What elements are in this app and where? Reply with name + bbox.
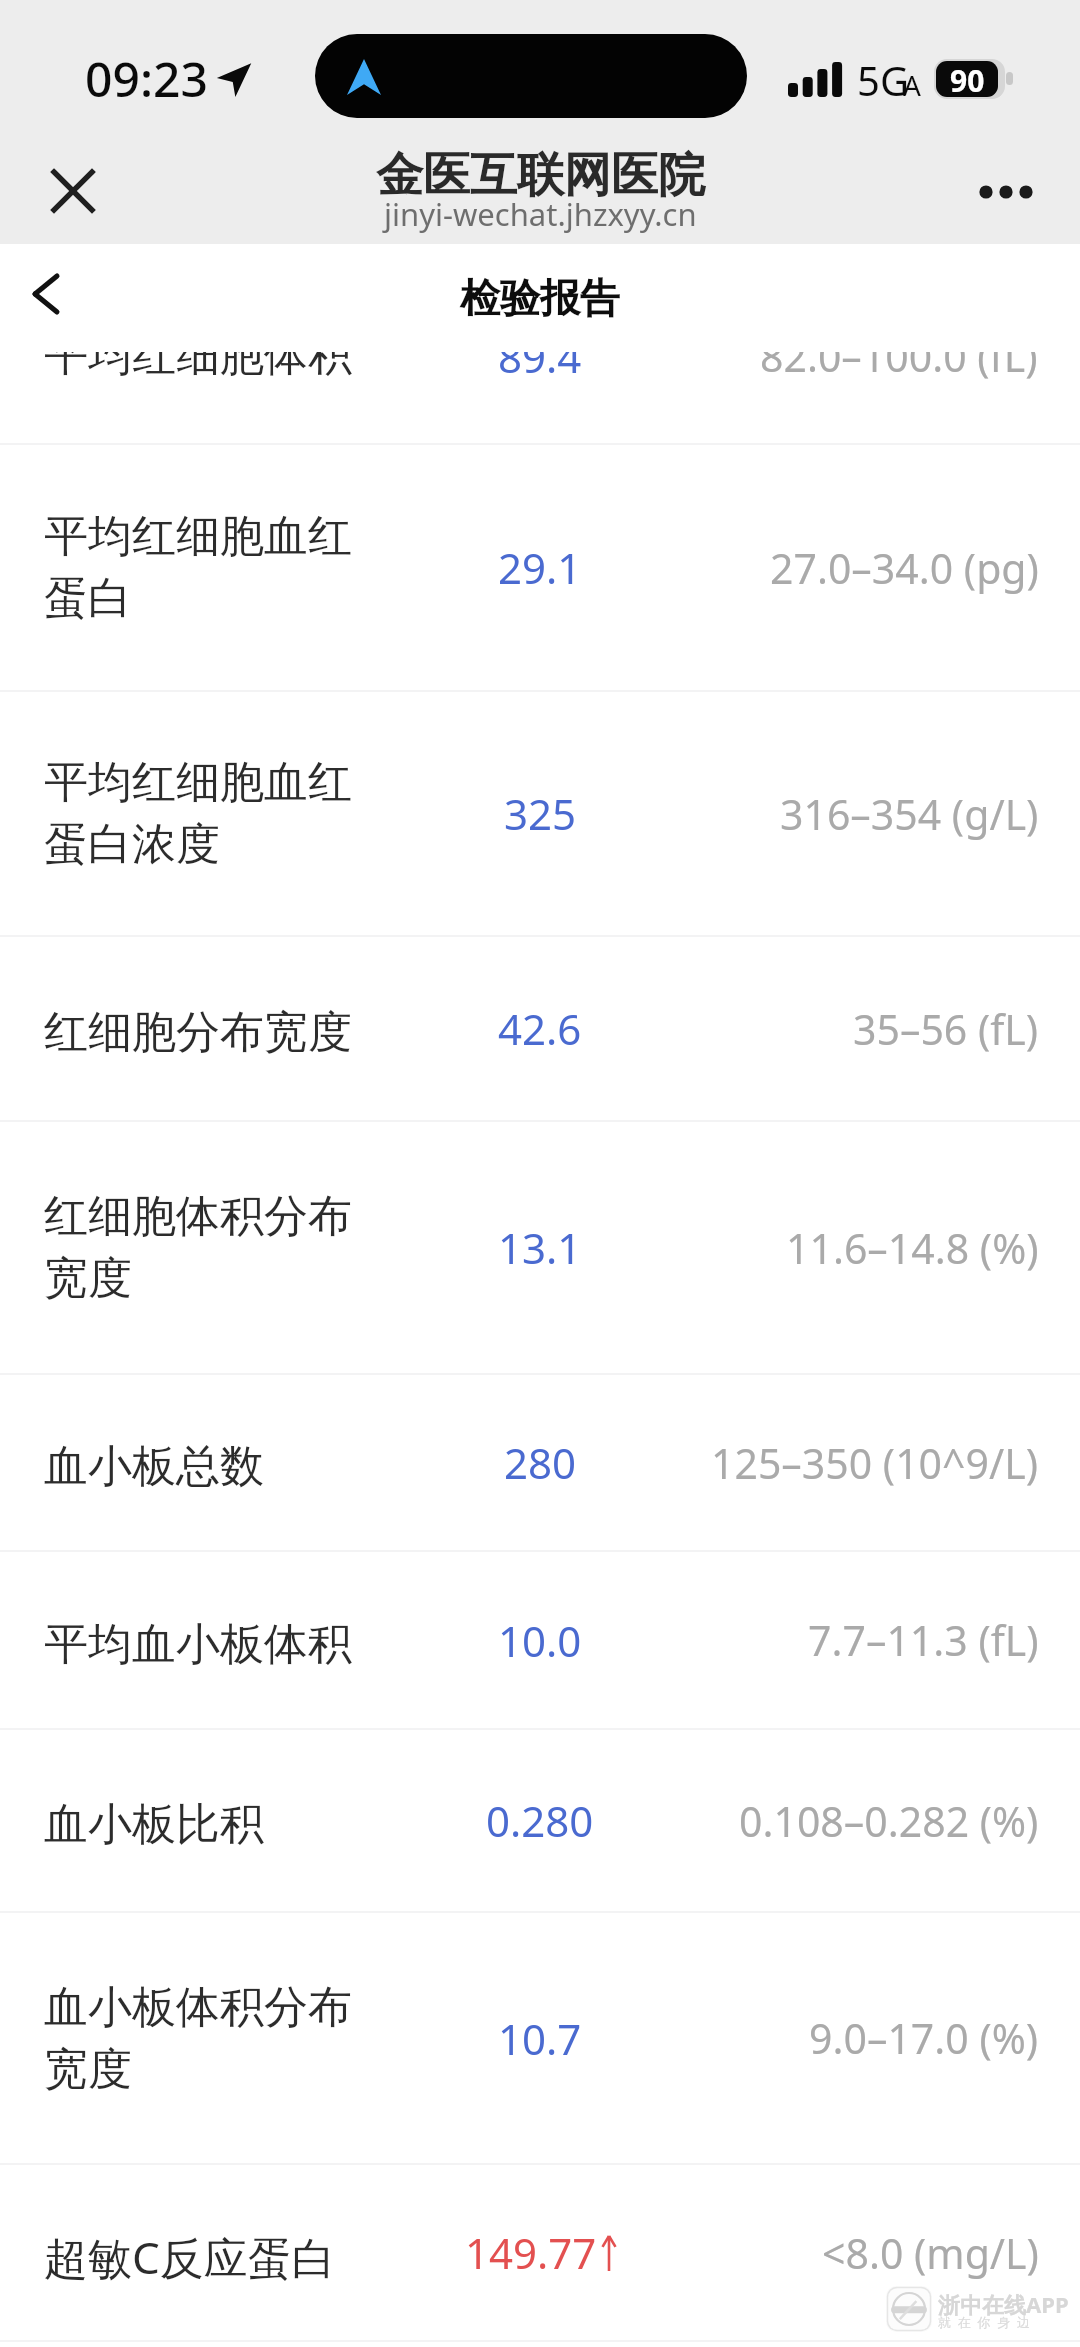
staticText: 29.1 [498,539,582,596]
staticText: 5G [857,53,909,107]
staticText: 280 [504,1434,577,1491]
staticText: 血小板总数 [44,1439,264,1494]
button[interactable]: 平均血小板体积 [0,1552,1080,1728]
staticText: 125–350 (10^9/L) [711,1435,1039,1491]
staticText: 血小板体积分布宽度 [44,1980,384,2097]
staticText: 82.0–100.0 (fL) [760,352,1038,384]
staticText: 90 [950,61,985,96]
staticText: 7.7–11.3 (fL) [808,1612,1039,1668]
button[interactable]: 血小板体积分布宽度 [0,1913,1080,2163]
button[interactable]: 平均红细胞血红蛋白 [0,445,1080,690]
staticText: 13.1 [498,1219,582,1276]
staticText: 红细胞体积分布宽度 [44,1189,384,1306]
button[interactable]: More options [955,140,1059,244]
staticText: 超敏C反应蛋白 [44,2227,336,2287]
staticText: 42.6 [498,1000,582,1057]
staticText: 检验报告 [460,273,620,323]
staticText: 0.280 [486,1792,594,1849]
staticText: 35–56 (fL) [853,1001,1039,1057]
button[interactable]: 血小板比积 [0,1730,1080,1911]
button[interactable]: Close [21,139,125,243]
button[interactable]: 平均红细胞体积 [0,352,1080,443]
button[interactable]: 血小板总数 [0,1375,1080,1550]
staticText: A [903,66,921,104]
staticText: <8.0 (mg/L) [822,2225,1039,2281]
button[interactable]: 平均红细胞血红蛋白浓度 [0,692,1080,935]
staticText: 平均红细胞体积 [44,352,352,383]
staticText: 平均血小板体积 [44,1617,352,1672]
button[interactable]: 红细胞体积分布宽度 [0,1122,1080,1373]
button[interactable]: 红细胞分布宽度 [0,937,1080,1120]
staticText: 325 [504,785,577,842]
staticText: 浙中在线APP [938,2289,1069,2319]
staticText: 27.0–34.0 (pg) [770,540,1039,596]
button[interactable]: 超敏C反应蛋白 [0,2165,1080,2340]
staticText: 平均红细胞血红蛋白浓度 [44,755,384,872]
staticText: 就 在 你 身 边 [938,2313,1031,2331]
staticText: 0.108–0.282 (%) [739,1793,1039,1849]
staticText: 血小板比积 [44,1797,264,1852]
staticText: 9.0–17.0 (%) [809,2010,1039,2066]
staticText: 10.0 [498,1612,582,1669]
staticText: 316–354 (g/L) [780,786,1039,842]
staticText: 11.6–14.8 (%) [786,1220,1039,1276]
staticText: 149.77 [465,2224,597,2281]
staticText: 10.7 [498,2010,582,2067]
button[interactable]: Back [0,240,98,348]
staticText: jinyi-wechat.jhzxyy.cn [384,193,697,235]
staticText: 红细胞分布宽度 [44,1005,352,1060]
staticText: 平均红细胞血红蛋白 [44,509,384,626]
staticText: 89.4 [498,352,582,385]
staticText: 09:23 [85,46,208,111]
staticText: 金医互联网医院 [376,146,705,205]
